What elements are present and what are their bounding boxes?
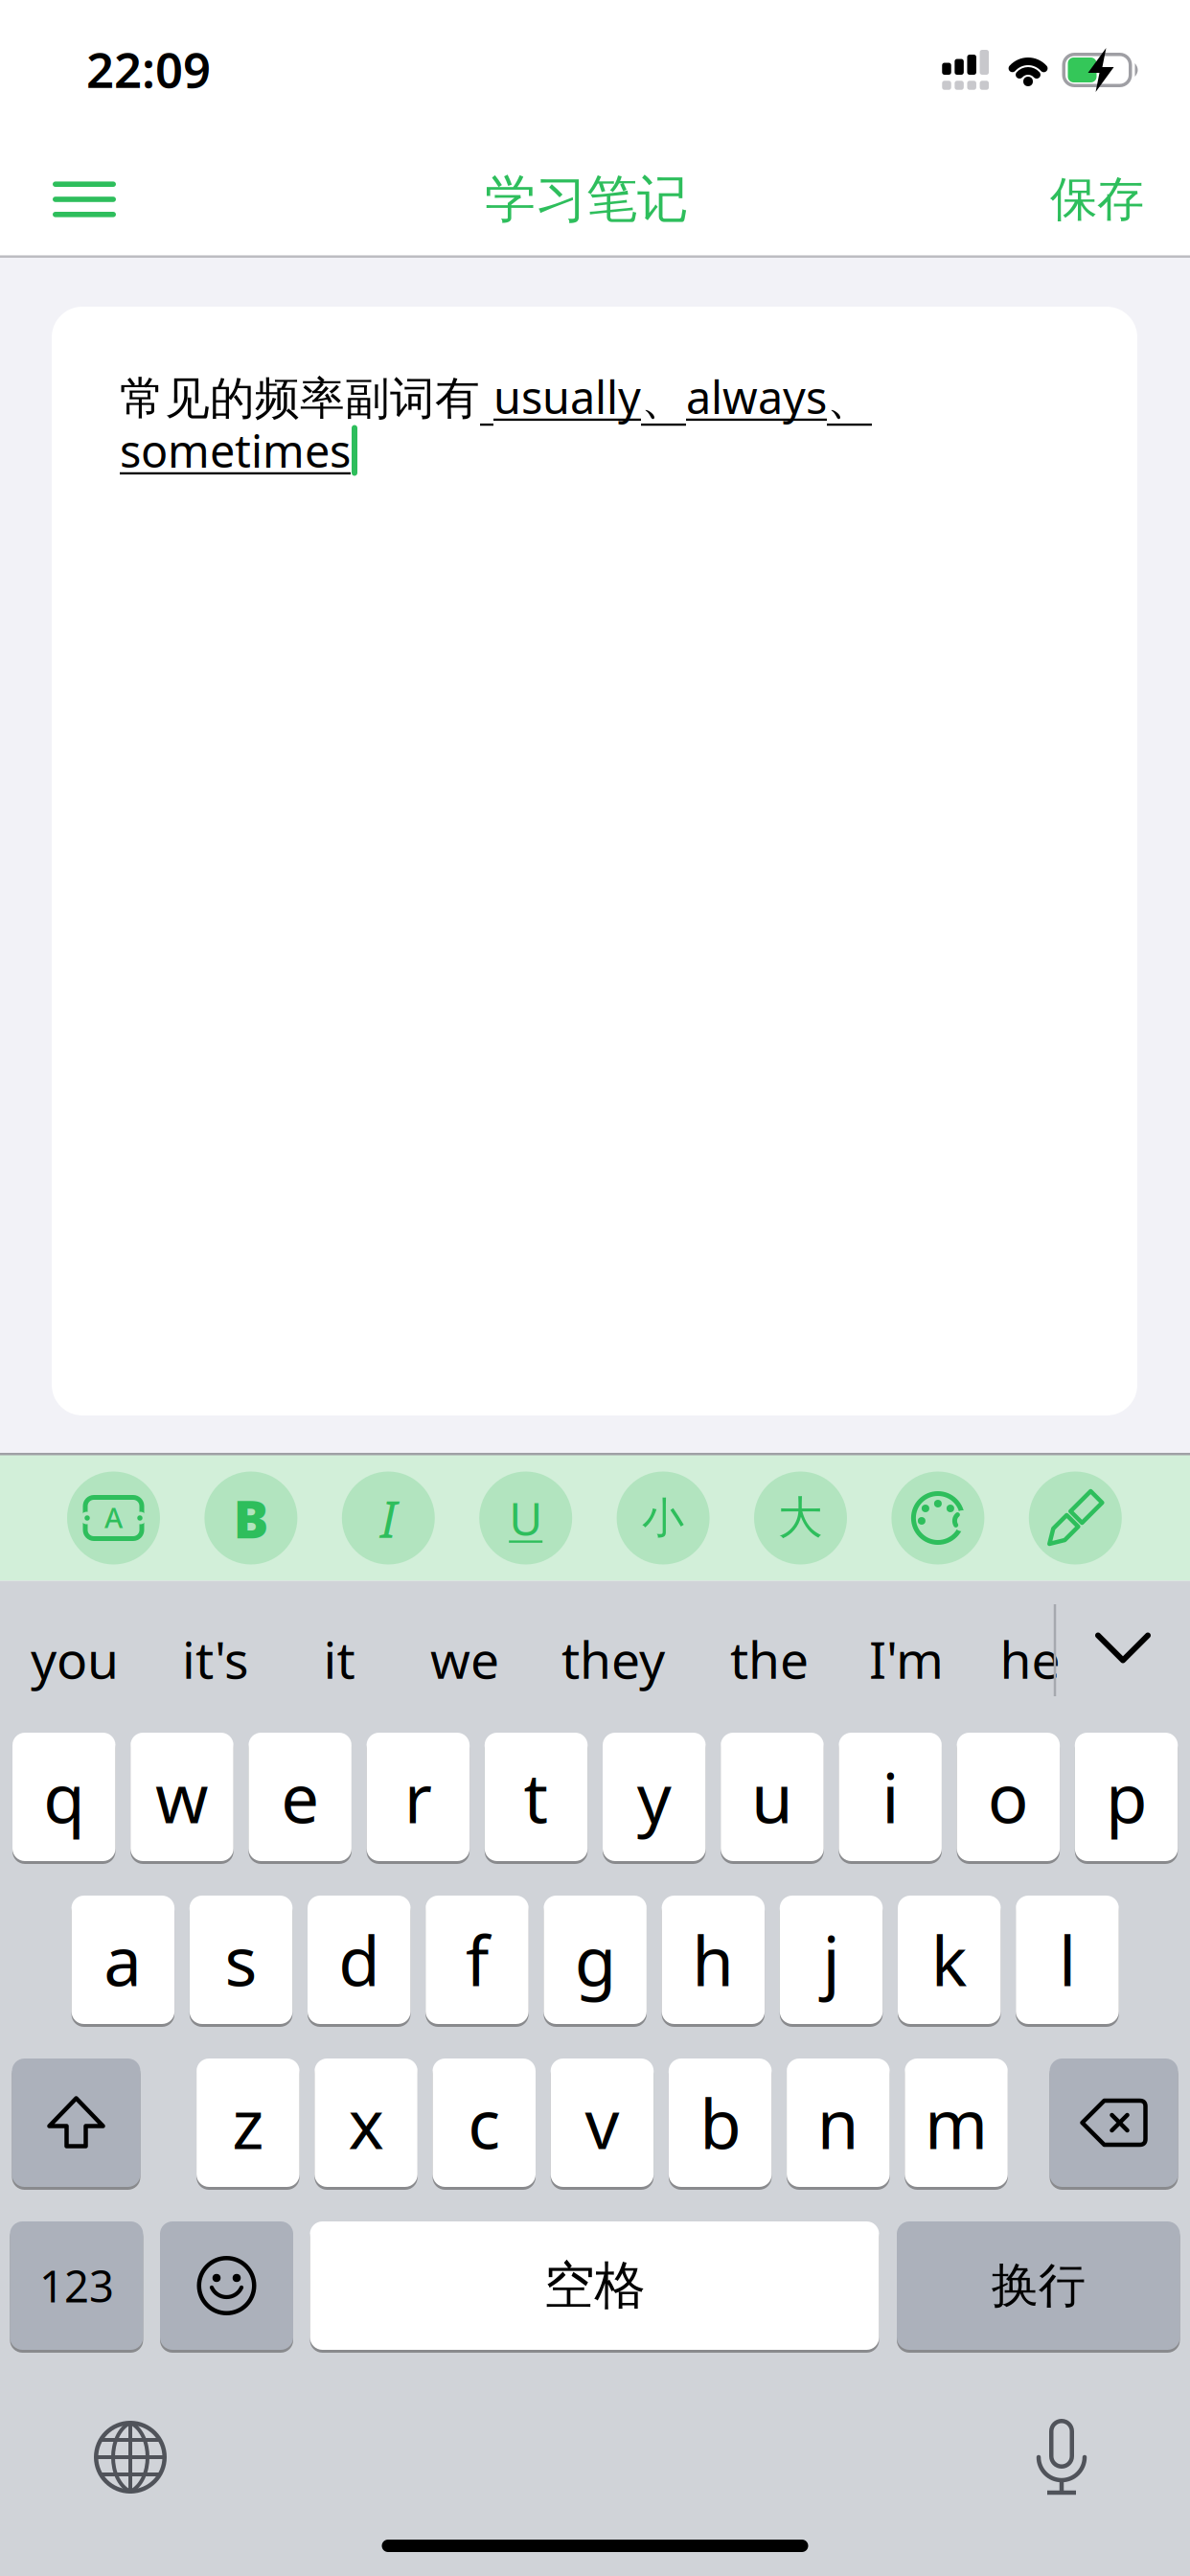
button[interactable]: e [249,1733,352,1861]
button[interactable] [41,166,127,233]
staticText: I'm [869,1625,944,1693]
button[interactable]: j [780,1896,883,2024]
button[interactable]: U [479,1472,572,1564]
button[interactable]: p [1075,1733,1178,1861]
button[interactable] [94,2421,167,2494]
staticText: you [31,1625,119,1693]
staticText: d [338,1915,380,2005]
staticText: r [404,1752,432,1842]
staticText: 学习笔记 [485,168,688,231]
staticText: e [281,1752,319,1842]
staticText: the [730,1625,809,1693]
button[interactable] [1029,1472,1122,1564]
staticText: b [700,2078,741,2168]
staticText: we [430,1625,499,1693]
button[interactable]: u [721,1733,824,1861]
staticText: it [323,1625,355,1693]
staticText: p [1106,1752,1147,1842]
staticText: f [466,1915,489,2005]
staticText: l [1059,1915,1076,2005]
staticText: u [751,1752,793,1842]
button[interactable]: it [323,1625,355,1693]
button[interactable]: i [839,1733,942,1861]
staticText: 保存 [1050,170,1144,228]
button[interactable] [160,2221,293,2350]
button[interactable]: q [12,1733,115,1861]
button[interactable]: z [197,2058,300,2187]
button[interactable]: g [544,1896,647,2024]
button[interactable]: we [430,1625,499,1693]
staticText: h [692,1915,734,2005]
staticText: 22:09 [86,37,211,101]
staticText: i [882,1752,899,1842]
staticText: B [233,1483,269,1553]
button[interactable] [1096,1633,1150,1662]
button[interactable]: k [898,1896,1001,2024]
staticText: 小 [642,1492,684,1544]
staticText: m [925,2078,988,2168]
button[interactable] [891,1472,984,1564]
button[interactable]: they [561,1625,665,1693]
button[interactable] [1050,2058,1178,2187]
button[interactable]: he [1000,1625,1060,1693]
staticText: j [823,1915,840,2005]
staticText: c [468,2078,500,2168]
button[interactable]: d [308,1896,411,2024]
staticText: they [561,1625,665,1693]
button[interactable]: r [367,1733,470,1861]
button[interactable] [12,2058,140,2187]
staticText: 空格 [544,2254,645,2317]
staticText: k [931,1915,968,2005]
button[interactable]: b [669,2058,772,2187]
staticText: A [104,1498,123,1536]
button[interactable]: you [31,1625,119,1693]
button[interactable]: I [342,1472,435,1564]
staticText: sometimes [120,421,351,480]
staticText: U [509,1487,542,1548]
button[interactable]: 123 [10,2221,143,2350]
staticText: 大 [778,1490,823,1545]
button[interactable]: 换行 [897,2221,1180,2350]
staticText: z [232,2078,264,2168]
button[interactable]: the [730,1625,809,1693]
button[interactable]: 空格 [310,2221,879,2350]
button[interactable]: a [71,1896,174,2024]
button[interactable]: x [315,2058,418,2187]
button[interactable]: y [603,1733,706,1861]
staticText: t [524,1752,549,1842]
button[interactable]: n [787,2058,890,2187]
button[interactable]: B [204,1472,297,1564]
button[interactable]: 大 [754,1472,847,1564]
button[interactable]: it's [182,1625,249,1693]
staticText: he [1000,1625,1060,1693]
button[interactable]: v [551,2058,654,2187]
button[interactable]: f [426,1896,529,2024]
staticText: g [574,1915,616,2005]
button[interactable]: A [67,1472,160,1564]
staticText: v [585,2078,619,2168]
button[interactable]: o [957,1733,1060,1861]
staticText: it's [182,1625,249,1693]
staticText: x [348,2078,384,2168]
staticText: I [380,1484,396,1552]
staticText: 换行 [991,2257,1085,2315]
staticText: 123 [39,2257,114,2314]
staticText: n [817,2078,859,2168]
staticText: s [225,1915,257,2005]
button[interactable]: s [190,1896,293,2024]
staticText: y [637,1752,671,1842]
button[interactable]: l [1016,1896,1119,2024]
staticText: o [988,1752,1029,1842]
staticText: q [43,1752,85,1842]
button[interactable]: c [433,2058,536,2187]
button[interactable]: h [662,1896,765,2024]
staticText: 常见的频率副词有 usually、always、 [120,367,872,426]
button[interactable]: w [130,1733,233,1861]
button[interactable]: 保存 [1030,161,1164,238]
button[interactable]: 小 [617,1472,710,1564]
button[interactable]: t [485,1733,588,1861]
button[interactable] [1033,2419,1090,2495]
staticText: w [155,1752,209,1842]
button[interactable]: I'm [869,1625,944,1693]
button[interactable]: m [905,2058,1008,2187]
